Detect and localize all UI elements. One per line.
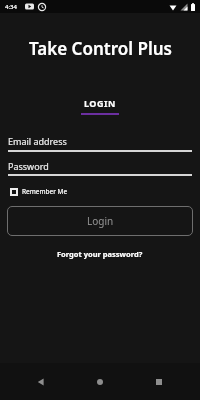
staticText: Forgot your password? (57, 249, 143, 259)
staticText: Remember Me (22, 187, 68, 196)
button[interactable]: LOGIN (0, 97, 200, 115)
button[interactable]: Password (8, 160, 192, 176)
staticText: Password (8, 160, 49, 172)
staticText: Take Control Plus (29, 37, 172, 60)
staticText: LOGIN (84, 97, 116, 109)
staticText: Login (87, 214, 114, 228)
button[interactable]: Forgot your password? (0, 249, 200, 259)
staticText: Email address (8, 135, 67, 147)
button[interactable] (148, 371, 170, 393)
button[interactable]: Email address (8, 135, 192, 152)
button[interactable]: Login (7, 206, 193, 236)
staticText: 4:34 (5, 3, 17, 11)
button[interactable] (89, 371, 111, 393)
button[interactable]: Remember Me (10, 187, 68, 196)
button[interactable] (30, 371, 52, 393)
